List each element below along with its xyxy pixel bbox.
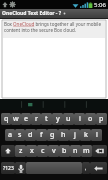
- staticText: u: [66, 114, 71, 124]
- button[interactable]: m: [81, 145, 92, 157]
- button[interactable]: [0, 99, 108, 110]
- button[interactable]: s: [15, 129, 25, 141]
- staticText: b: [62, 146, 67, 156]
- button[interactable]: l: [91, 129, 102, 141]
- staticText: t: [45, 114, 48, 124]
- button[interactable]: z: [15, 145, 26, 157]
- staticText: e: [24, 114, 29, 124]
- staticText: OneCloud Text Editor - ?: [2, 10, 62, 17]
- staticText: d: [28, 130, 33, 140]
- button[interactable]: p: [96, 113, 107, 125]
- staticText: Box OneCloud brings together all your mo…: [4, 21, 104, 33]
- staticText: p: [99, 114, 104, 124]
- staticText: x: [30, 146, 34, 156]
- button[interactable]: o: [85, 113, 96, 125]
- staticText: o: [88, 114, 93, 124]
- staticText: n: [73, 146, 78, 156]
- button[interactable]: Voice input: [15, 162, 26, 174]
- button[interactable]: Backspace: [92, 145, 107, 157]
- button[interactable]: Box OneCloud brings together all your mo…: [2, 20, 106, 98]
- staticText: j: [74, 130, 76, 140]
- staticText: q: [4, 114, 9, 124]
- button[interactable]: v: [48, 145, 59, 157]
- staticText: z: [19, 146, 23, 156]
- button[interactable]: n: [70, 145, 81, 157]
- button[interactable]: x: [26, 145, 37, 157]
- button[interactable]: j: [69, 129, 80, 141]
- button[interactable]: d: [25, 129, 36, 141]
- button[interactable]: i: [74, 113, 85, 125]
- staticText: 5:06: [94, 1, 106, 9]
- staticText: r: [35, 114, 38, 124]
- button[interactable]: b: [59, 145, 70, 157]
- button[interactable]: u: [63, 113, 74, 125]
- button[interactable]: k: [80, 129, 91, 141]
- button[interactable]: g: [47, 129, 58, 141]
- staticText: f: [40, 130, 43, 140]
- button[interactable]: OneCloud Text Editor - ?: [0, 9, 108, 18]
- button[interactable]: h: [58, 129, 69, 141]
- staticText: k: [84, 130, 88, 140]
- button[interactable]: ,: [82, 162, 90, 174]
- staticText: g: [50, 130, 55, 140]
- button[interactable]: q: [1, 113, 11, 125]
- button[interactable]: t: [41, 113, 52, 125]
- staticText: i: [79, 114, 81, 124]
- staticText: w: [13, 114, 19, 124]
- button[interactable]: [26, 162, 82, 174]
- button[interactable]: e: [21, 113, 31, 125]
- button[interactable]: Enter: [90, 162, 107, 174]
- staticText: l: [96, 130, 98, 140]
- button[interactable]: r: [31, 113, 41, 125]
- button[interactable]: y: [52, 113, 63, 125]
- button[interactable]: w: [11, 113, 21, 125]
- button[interactable]: c: [37, 145, 48, 157]
- button[interactable]: f: [36, 129, 47, 141]
- staticText: h: [61, 130, 66, 140]
- button[interactable]: ?123: [1, 162, 15, 174]
- staticText: c: [41, 146, 45, 156]
- staticText: v: [52, 146, 56, 156]
- staticText: a: [8, 130, 13, 140]
- staticText: m: [83, 146, 90, 156]
- button[interactable]: a: [5, 129, 15, 141]
- staticText: s: [18, 130, 22, 140]
- staticText: y: [56, 114, 60, 124]
- button[interactable]: Shift: [1, 145, 15, 157]
- staticText: ,: [85, 165, 87, 172]
- staticText: ?123: [3, 165, 14, 172]
